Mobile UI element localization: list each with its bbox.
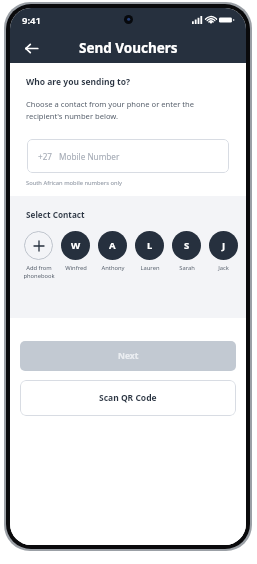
button[interactable]: Next: [20, 341, 236, 371]
staticText: Select Contact: [26, 209, 85, 220]
button[interactable]: Add from phonebook: [20, 231, 57, 280]
staticText: Mobile Number: [59, 151, 120, 162]
button[interactable]: Back: [17, 34, 45, 62]
staticText: +27: [38, 151, 53, 162]
other: Add from phonebook: [24, 231, 53, 260]
button[interactable]: A: [94, 231, 131, 272]
staticText: Choose a contact from your phone or ente…: [26, 99, 226, 122]
button[interactable]: W: [57, 231, 94, 272]
staticText: Next: [118, 350, 139, 362]
staticText: Add from phonebook: [23, 264, 55, 280]
button[interactable]: L: [131, 231, 168, 272]
staticText: W: [71, 239, 81, 252]
staticText: Who are you sending to?: [26, 76, 131, 88]
staticText: Lauren: [140, 264, 160, 272]
staticText: S: [184, 239, 190, 252]
button[interactable]: +27: [27, 139, 229, 173]
staticText: Winfred: [65, 264, 87, 272]
staticText: J: [222, 239, 226, 252]
button[interactable]: J: [205, 231, 242, 272]
staticText: Sarah: [179, 264, 195, 272]
staticText: Jack: [218, 264, 229, 272]
staticText: South African mobile numbers only: [26, 179, 123, 187]
staticText: Anthony: [101, 264, 125, 272]
staticText: A: [109, 239, 116, 252]
button[interactable]: S: [168, 231, 205, 272]
button[interactable]: Scan QR Code: [20, 380, 236, 416]
staticText: 9:41: [22, 14, 41, 27]
staticText: Send Vouchers: [79, 39, 178, 57]
staticText: Scan QR Code: [99, 392, 157, 404]
staticText: L: [147, 239, 153, 252]
